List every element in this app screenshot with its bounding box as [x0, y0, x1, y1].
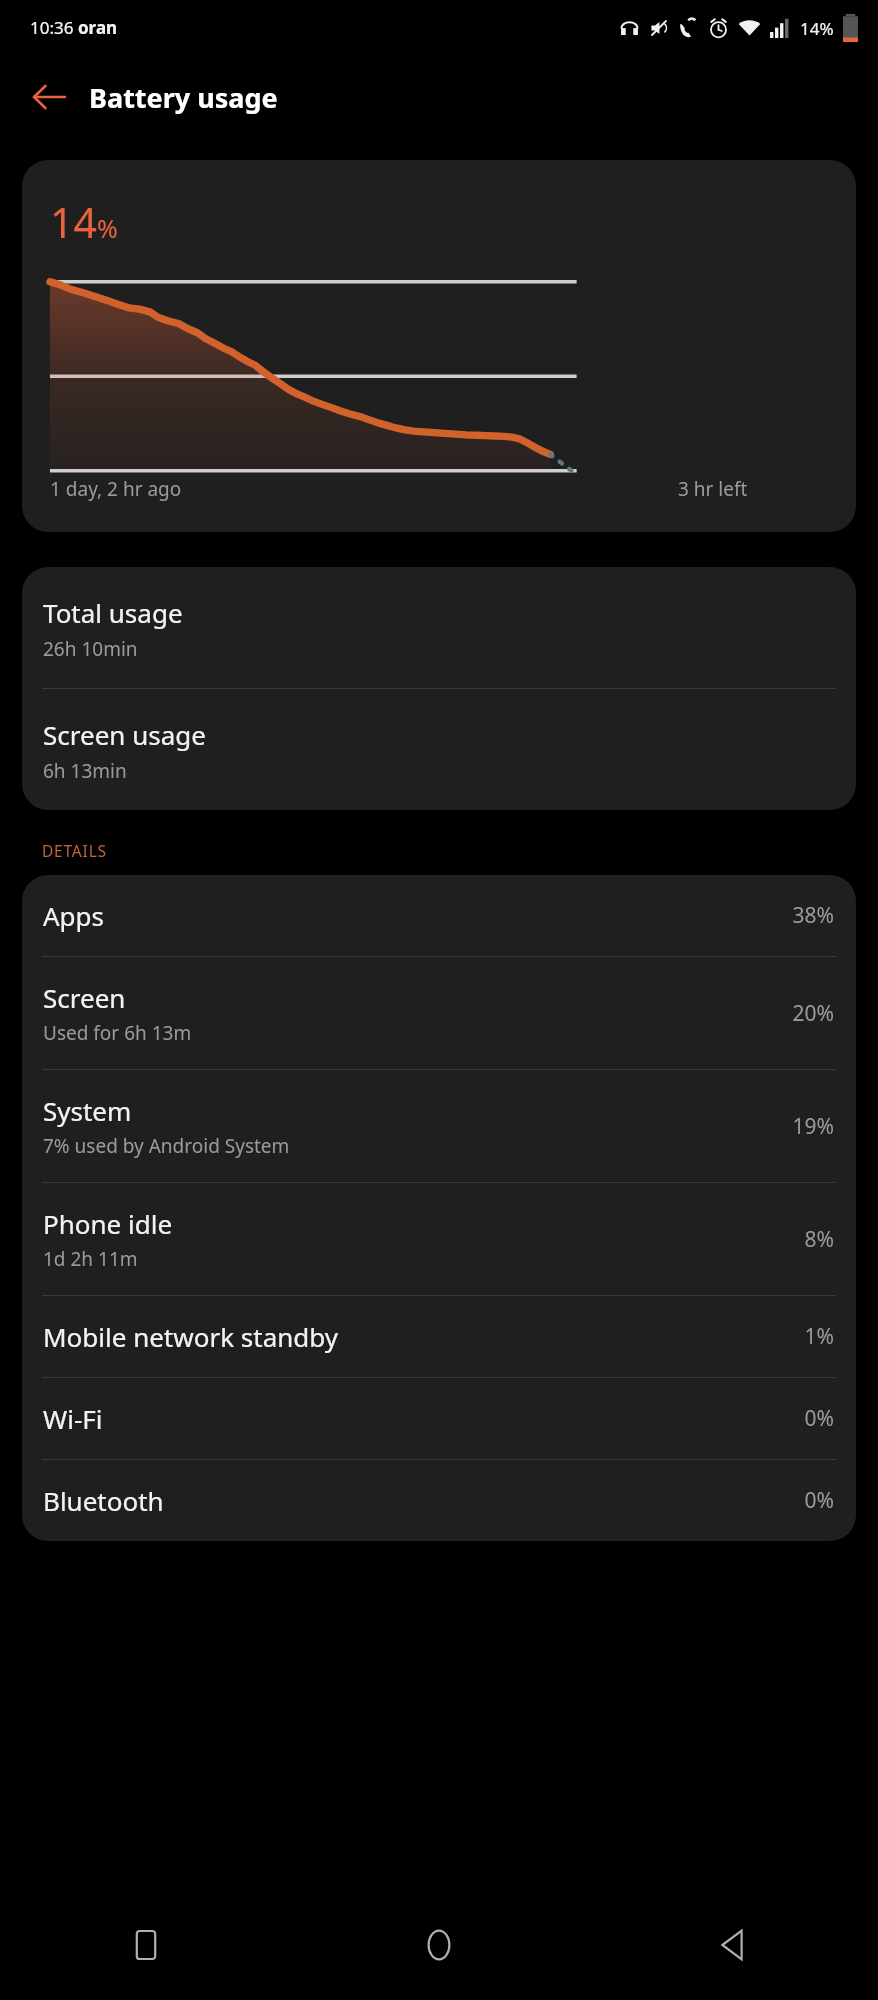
staticText: 10:36	[30, 16, 78, 39]
button[interactable]: Screen usage	[22, 689, 856, 810]
staticText: Mobile network standby	[43, 1319, 339, 1354]
staticText: 0%	[804, 1404, 834, 1433]
staticText: Screen	[43, 980, 126, 1015]
staticText: 14	[50, 194, 97, 250]
staticText: %	[97, 211, 118, 245]
button[interactable]: Total usage	[22, 567, 856, 688]
button[interactable]: Apps	[22, 875, 856, 956]
staticText: 19%	[792, 1112, 834, 1141]
staticText: 14%	[800, 17, 834, 40]
staticText: 3 hr left	[678, 476, 748, 502]
staticText: Phone idle	[43, 1206, 173, 1241]
staticText: Screen usage	[43, 717, 206, 752]
staticText: Bluetooth	[43, 1483, 164, 1518]
staticText: 0%	[804, 1486, 834, 1515]
staticText: 38%	[792, 901, 834, 930]
staticText: 1d 2h 11m	[43, 1246, 138, 1272]
button[interactable]: Wi-Fi	[22, 1378, 856, 1459]
button[interactable]: Phone idle	[22, 1183, 856, 1295]
staticText: System	[43, 1093, 132, 1128]
staticText: 20%	[792, 999, 834, 1028]
button[interactable]: System	[22, 1070, 856, 1182]
button[interactable]: Recents	[0, 1890, 292, 2000]
staticText: oran	[78, 16, 118, 39]
staticText: Total usage	[43, 595, 183, 630]
staticText: 8%	[804, 1225, 834, 1254]
button[interactable]: Back	[585, 1890, 878, 2000]
staticText: 6h 13min	[43, 758, 127, 784]
staticText: 1%	[804, 1322, 834, 1351]
button[interactable]: Back	[22, 70, 76, 124]
button[interactable]: Mobile network standby	[22, 1296, 856, 1377]
staticText: 7% used by Android System	[43, 1133, 290, 1159]
staticText: DETAILS	[42, 840, 107, 861]
staticText: Wi-Fi	[43, 1401, 103, 1436]
staticText: Battery usage	[89, 79, 278, 116]
staticText: Used for 6h 13m	[43, 1020, 192, 1046]
button[interactable]: Screen	[22, 957, 856, 1069]
staticText: Apps	[43, 898, 105, 933]
button[interactable]: Bluetooth	[22, 1460, 856, 1541]
staticText: 1 day, 2 hr ago	[50, 476, 182, 502]
staticText: 26h 10min	[43, 636, 138, 662]
button[interactable]: Home	[292, 1890, 585, 2000]
